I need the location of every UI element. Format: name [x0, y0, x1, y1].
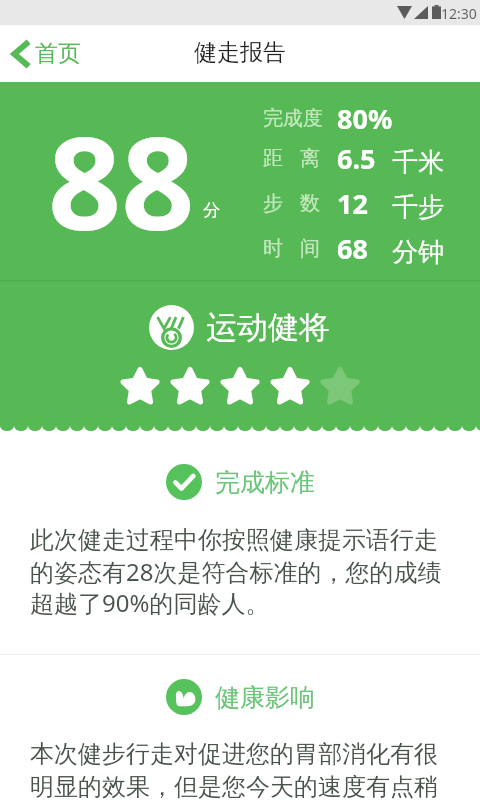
- staticText: 超越了90%的同龄人。: [30, 586, 270, 619]
- staticText: 68: [337, 230, 368, 267]
- staticText: 80%: [337, 100, 393, 137]
- staticText: 健走报告: [194, 38, 286, 67]
- staticText: 健康影响: [215, 682, 315, 713]
- staticText: 离: [300, 146, 320, 171]
- staticText: 12: [337, 185, 368, 222]
- staticText: 明显的效果，但是您今天的速度有点稍: [30, 772, 438, 800]
- staticText: 的姿态有28次是符合标准的，您的成绩: [30, 555, 442, 588]
- staticText: 首页: [35, 39, 81, 68]
- button[interactable]: Completion standard: [166, 464, 202, 500]
- staticText: 运动健将: [206, 308, 330, 347]
- staticText: 成: [283, 106, 303, 131]
- staticText: 千米: [392, 146, 444, 179]
- staticText: 间: [300, 236, 320, 261]
- button[interactable]: Health impact: [166, 679, 202, 715]
- staticText: 千步: [392, 191, 444, 224]
- staticText: 步: [263, 191, 283, 216]
- staticText: 度: [303, 106, 320, 131]
- staticText: 完: [263, 106, 283, 131]
- staticText: 88: [48, 93, 195, 267]
- staticText: 分钟: [392, 236, 444, 269]
- staticText: 完成标准: [215, 467, 315, 498]
- staticText: 本次健步行走对促进您的胃部消化有很: [30, 739, 438, 769]
- staticText: 12:30: [441, 4, 477, 23]
- staticText: 6.5: [337, 140, 376, 177]
- button[interactable]: 首页: [0, 33, 95, 74]
- staticText: 距: [263, 146, 283, 171]
- staticText: 数: [300, 191, 320, 216]
- staticText: 分: [203, 200, 220, 221]
- staticText: 此次健走过程中你按照健康提示语行走: [30, 525, 438, 555]
- staticText: 时: [263, 236, 283, 261]
